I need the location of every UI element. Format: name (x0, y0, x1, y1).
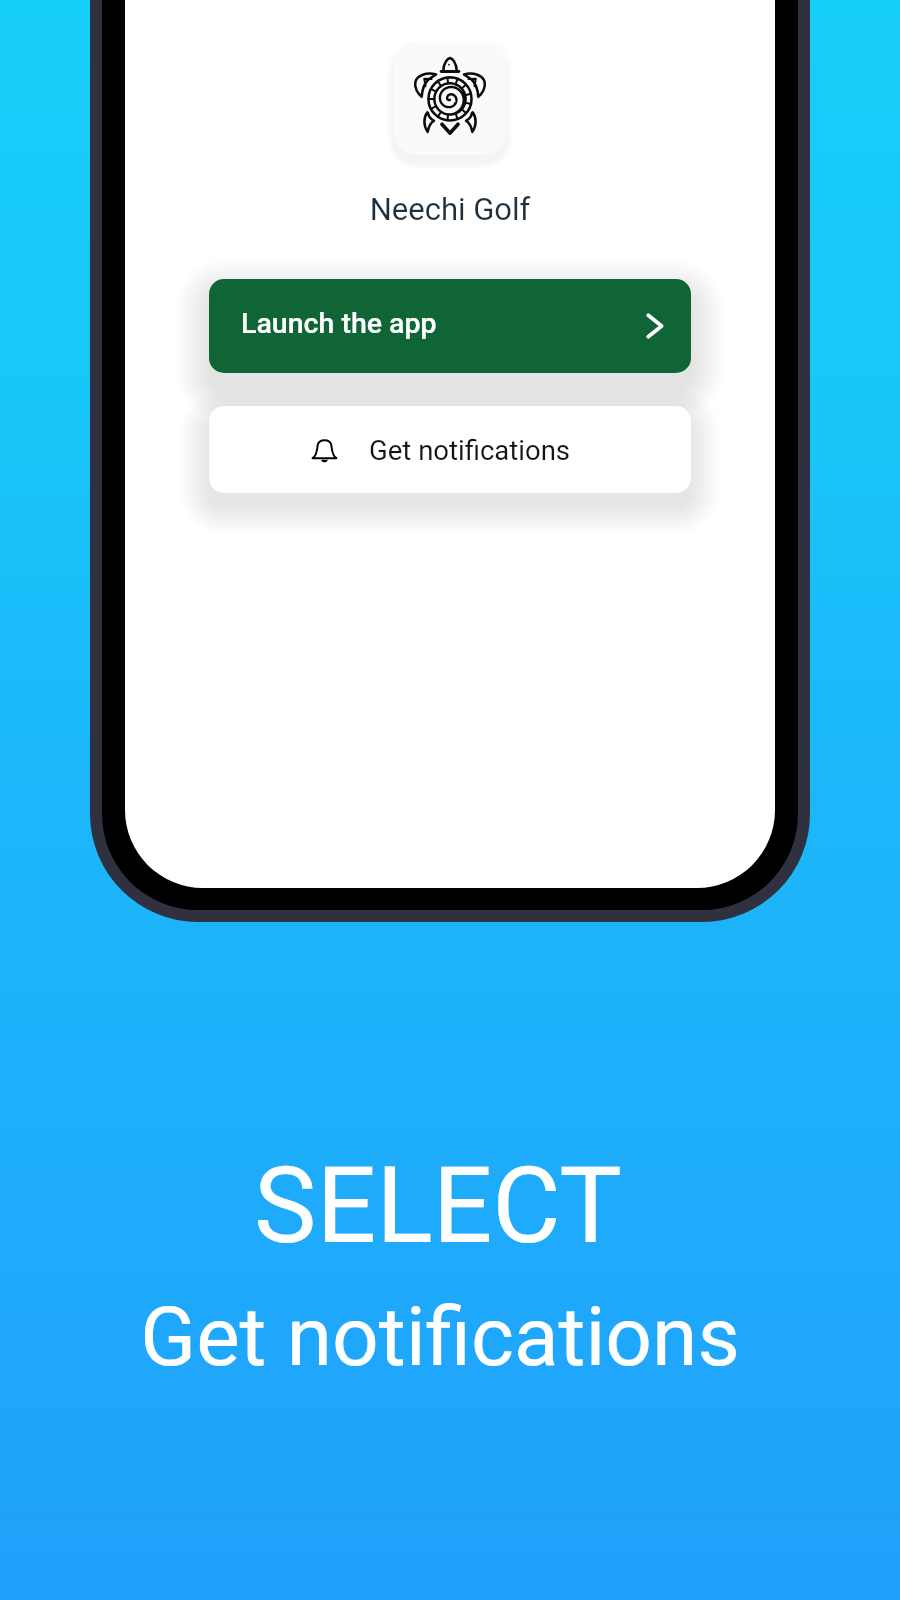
staticText: SELECT (0, 1145, 888, 1268)
button[interactable]: Get notifications (209, 406, 691, 493)
staticText: Get notifications (0, 1289, 890, 1385)
other: Neechi Golf app icon (394, 41, 506, 155)
staticText: Neechi Golf (125, 191, 775, 227)
staticText: Get notifications (369, 434, 571, 466)
button[interactable]: Launch the app (209, 279, 691, 373)
staticText: Launch the app (241, 307, 437, 340)
